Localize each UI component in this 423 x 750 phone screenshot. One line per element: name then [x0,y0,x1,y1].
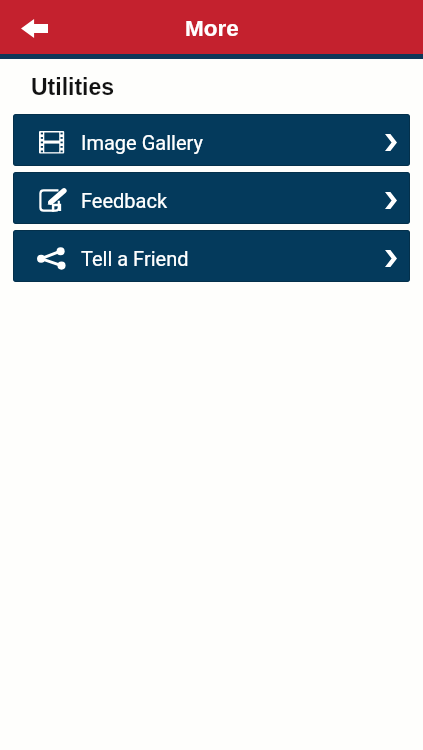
button[interactable]: Image Gallery [13,114,410,166]
button[interactable]: Back [8,4,60,50]
staticText: Utilities [31,74,115,100]
button[interactable]: Tell a Friend [13,230,410,282]
staticText: More [185,16,239,41]
staticText: Image Gallery [81,131,203,154]
staticText: Tell a Friend [81,247,189,270]
button[interactable]: Feedback [13,172,410,224]
staticText: Feedback [81,189,168,212]
